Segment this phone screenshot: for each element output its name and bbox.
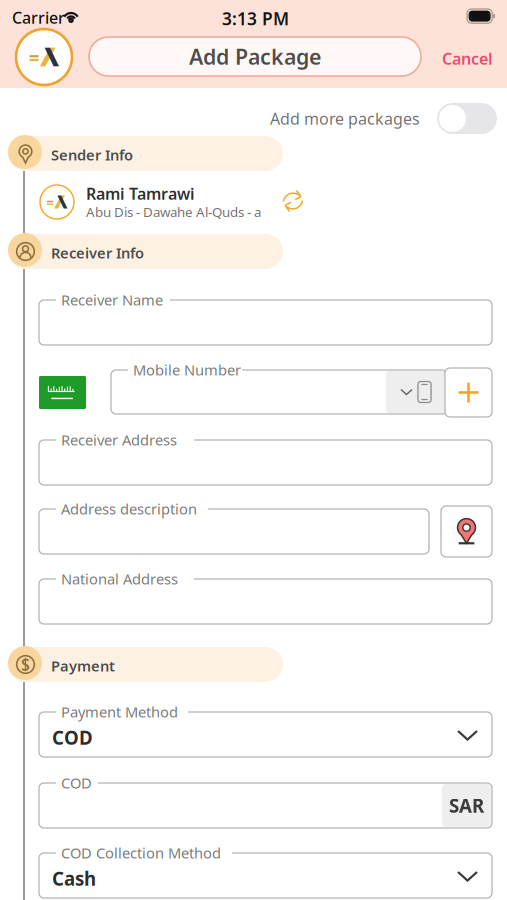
staticText: Add Package bbox=[189, 42, 321, 71]
button[interactable]: Swap sender and receiver bbox=[282, 190, 304, 212]
staticText: Address description bbox=[61, 499, 197, 518]
staticText: Rami Tamrawi bbox=[86, 183, 195, 204]
staticText: Sender Info bbox=[51, 145, 133, 164]
staticText: Payment bbox=[51, 656, 115, 675]
staticText: SAR bbox=[449, 793, 484, 818]
staticText: Mobile Number bbox=[133, 360, 241, 379]
button[interactable]: Add more packages bbox=[437, 103, 497, 134]
staticText: Receiver Address bbox=[61, 430, 177, 449]
button[interactable]: Cancel bbox=[442, 48, 493, 69]
staticText: Add more packages bbox=[270, 108, 420, 129]
button[interactable]: Add Package bbox=[89, 37, 421, 76]
staticText: Abu Dis - Dawahe Al-Quds - a bbox=[86, 203, 261, 221]
button[interactable]: Pick location on map bbox=[441, 506, 492, 557]
staticText: Cash bbox=[52, 866, 96, 891]
button[interactable]: Account bbox=[16, 29, 72, 85]
staticText: COD bbox=[61, 773, 92, 792]
staticText: Cancel bbox=[442, 48, 493, 69]
staticText: Receiver Info bbox=[51, 243, 144, 262]
staticText: Receiver Name bbox=[61, 290, 163, 309]
staticText: Payment Method bbox=[61, 702, 178, 721]
staticText: National Address bbox=[61, 569, 178, 588]
staticText: 3:13 PM bbox=[222, 7, 289, 30]
staticText: COD Collection Method bbox=[61, 843, 221, 862]
staticText: COD bbox=[52, 725, 93, 750]
staticText: Carrier bbox=[12, 7, 65, 28]
button[interactable]: Add another number bbox=[445, 368, 492, 417]
staticText: S bbox=[21, 654, 30, 675]
